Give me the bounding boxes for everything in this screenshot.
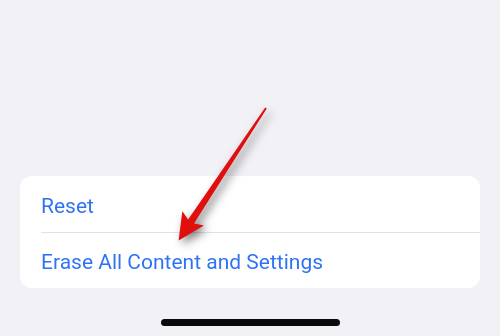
button[interactable]: Reset (20, 176, 480, 232)
staticText: Reset (41, 194, 94, 219)
button[interactable]: Erase All Content and Settings (20, 232, 480, 288)
staticText: Erase All Content and Settings (41, 250, 324, 275)
